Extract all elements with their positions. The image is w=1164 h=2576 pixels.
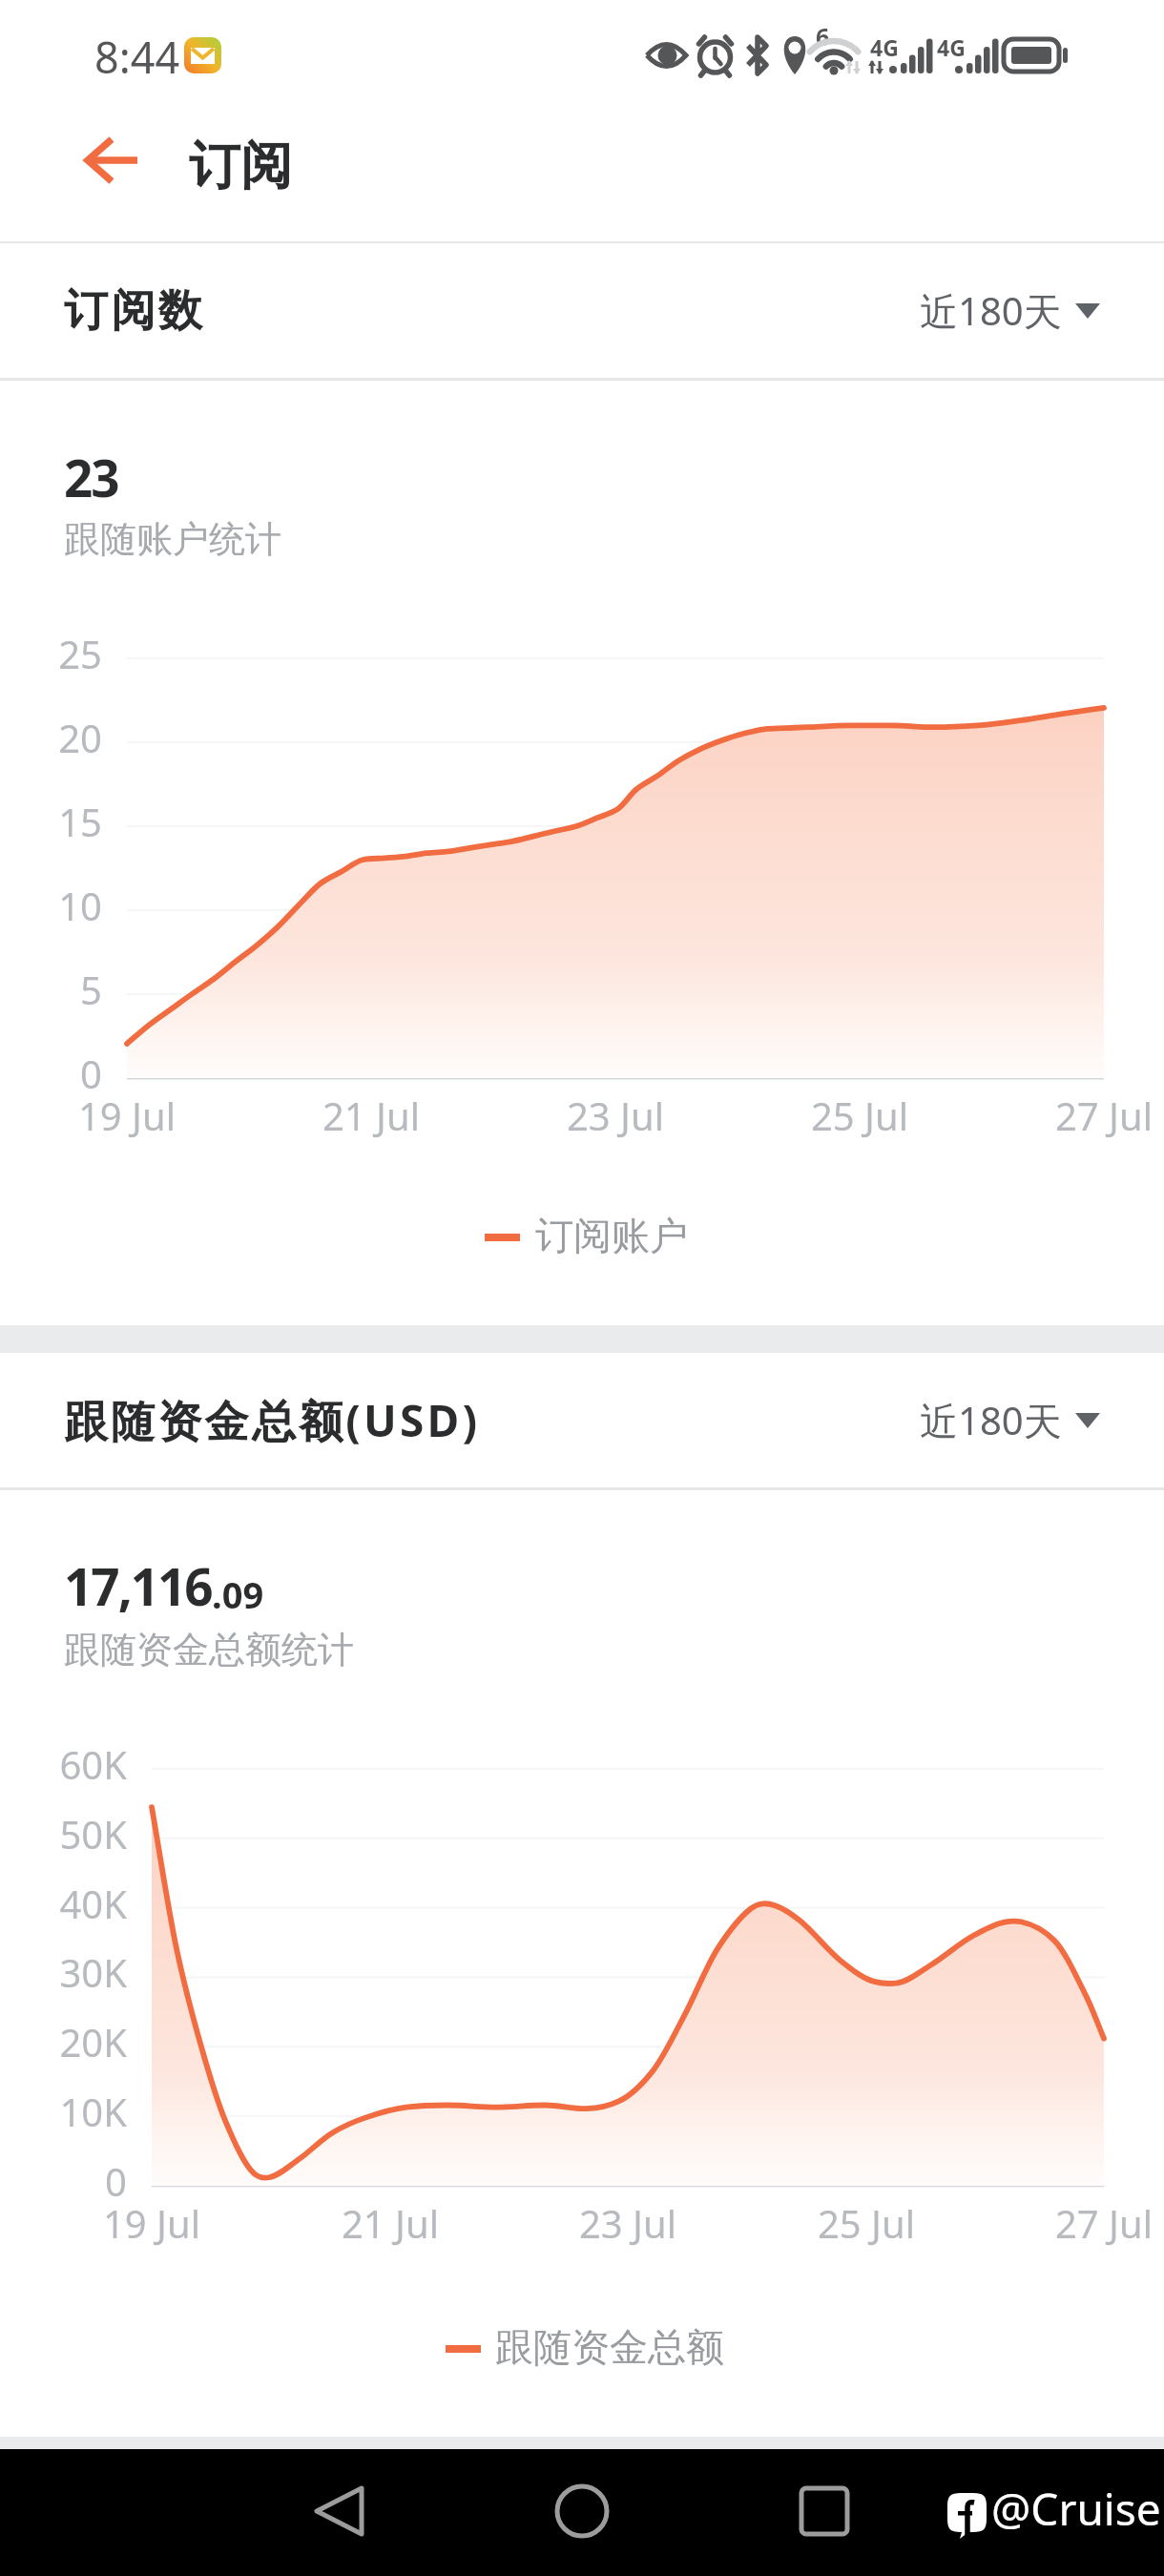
staticText: 近180天	[920, 1394, 1062, 1446]
staticText: @Cruise	[991, 2479, 1161, 2539]
staticText: 10K	[0, 2086, 127, 2137]
staticText: 5	[0, 964, 102, 1015]
staticText: 近180天	[920, 284, 1062, 337]
staticText: 30K	[0, 1946, 127, 1998]
staticText: 10	[0, 880, 102, 931]
button[interactable]: 订阅数	[0, 243, 1164, 378]
staticText: 21 Jul	[295, 2197, 486, 2249]
staticText: 19 Jul	[31, 1090, 222, 1141]
button[interactable]: Back	[59, 116, 155, 212]
staticText: 跟随资金总额(USD)	[64, 1390, 481, 1450]
staticText: 25 Jul	[764, 1090, 955, 1141]
staticText: 4G	[870, 32, 899, 62]
staticText: 27 Jul	[1008, 2197, 1164, 2249]
staticText: 19 Jul	[56, 2197, 247, 2249]
button[interactable]: Recents	[772, 2459, 877, 2564]
staticText: 0	[0, 2155, 127, 2207]
button[interactable]: Home	[530, 2459, 634, 2564]
staticText: 0	[0, 1048, 102, 1099]
staticText: 6	[816, 20, 830, 52]
staticText: 27 Jul	[1008, 1090, 1164, 1141]
staticText: 跟随资金总额统计	[64, 1627, 354, 1672]
button[interactable]: Back	[286, 2459, 391, 2564]
staticText: 跟随资金总额	[495, 2323, 724, 2371]
staticText: 订阅数	[64, 283, 205, 339]
staticText: 8:44	[94, 28, 180, 86]
button[interactable]: 近180天	[920, 1394, 1100, 1446]
staticText: 25	[0, 628, 102, 679]
staticText: 跟随账户统计	[64, 516, 281, 562]
staticText: .09	[212, 1569, 264, 1619]
staticText: 23 Jul	[520, 1090, 711, 1141]
staticText: 4G	[937, 32, 966, 62]
staticText: 40K	[0, 1878, 127, 1929]
staticText: 60K	[0, 1738, 127, 1790]
staticText: 15	[0, 796, 102, 847]
staticText: 订阅账户	[535, 1212, 688, 1259]
staticText: 50K	[0, 1808, 127, 1859]
staticText: 20	[0, 712, 102, 763]
button[interactable]: 近180天	[920, 284, 1100, 337]
staticText: 17,116	[64, 1551, 212, 1620]
staticText: 23 Jul	[532, 2197, 723, 2249]
staticText: 23	[64, 443, 118, 511]
staticText: 20K	[0, 2016, 127, 2067]
staticText: 25 Jul	[771, 2197, 962, 2249]
staticText: 订阅	[189, 134, 292, 198]
button[interactable]: 跟随资金总额(USD)	[0, 1353, 1164, 1487]
staticText: 21 Jul	[276, 1090, 467, 1141]
